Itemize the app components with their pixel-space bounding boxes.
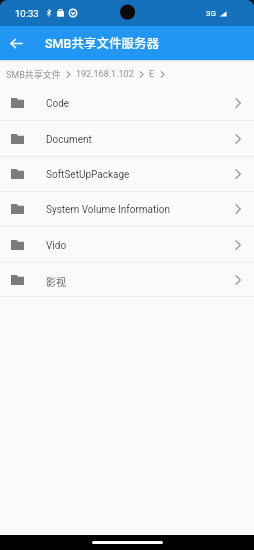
staticText: 影视 [46,274,66,288]
button[interactable]: 影视 [0,263,254,296]
button[interactable]: Vido [0,227,254,262]
button[interactable]: Back [0,27,32,59]
staticText: Document [46,134,92,146]
staticText: Code [46,98,70,110]
staticText: SMB共享文件 [6,68,61,81]
staticText: SMB共享文件服务器 [45,33,159,51]
staticText: 3G [206,9,216,18]
staticText: 192.168.1.102 [76,69,134,80]
staticText: E [149,69,155,80]
button[interactable]: 192.168.1.102 [76,69,134,80]
button[interactable]: Code [0,86,254,120]
button[interactable]: SMB共享文件 [6,68,61,81]
button[interactable]: System Volume Information [0,192,254,226]
staticText: 10:33 [15,8,39,19]
staticText: Vido [46,240,67,252]
staticText: SoftSetUpPackage [46,169,130,181]
button[interactable]: Document [0,121,254,156]
staticText: System Volume Information [46,204,170,216]
button[interactable]: SoftSetUpPackage [0,157,254,191]
button[interactable]: E [149,69,155,80]
